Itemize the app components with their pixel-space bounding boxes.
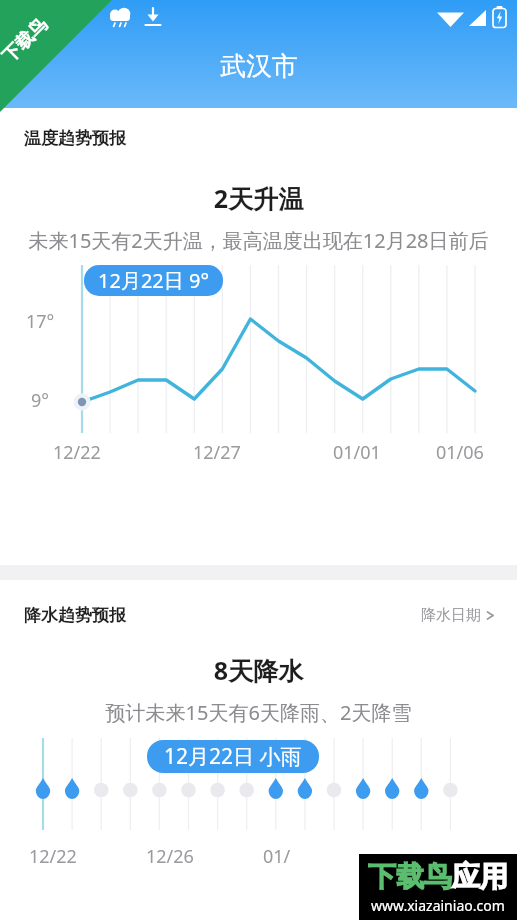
other: More [486, 611, 495, 620]
staticText: 01/01 [333, 440, 381, 465]
staticText: 17° [26, 309, 55, 334]
staticText: 降水趋势预报 [24, 605, 126, 626]
staticText: 应用 [452, 859, 508, 894]
button[interactable]: 12月22日 9° [84, 265, 223, 296]
staticText: 01/ [263, 844, 291, 869]
staticText: 12/26 [146, 844, 194, 869]
staticText: 12月22日 9° [98, 267, 209, 294]
staticText: 12/22 [53, 440, 101, 465]
staticText: 未来15天有2天升温，最高温度出现在12月28日前后 [24, 227, 493, 254]
staticText: 01/06 [436, 440, 484, 465]
staticText: 降水日期 [421, 606, 481, 625]
staticText: 下载鸟 [0, 13, 52, 68]
staticText: 12/22 [29, 844, 77, 869]
staticText: 武汉市 [220, 50, 298, 83]
staticText: 下载鸟 [368, 859, 452, 894]
staticText: 8天降水 [0, 653, 517, 687]
staticText: 温度趋势预报 [24, 128, 126, 149]
staticText: www.xiazainiao.com [371, 896, 505, 915]
staticText: 9° [31, 388, 49, 413]
staticText: 2天升温 [0, 181, 517, 215]
staticText: 12/27 [193, 440, 241, 465]
button[interactable]: 降水日期 [417, 602, 499, 629]
staticText: 12月22日 小雨 [164, 742, 302, 771]
staticText: 预计未来15天有6天降雨、2天降雪 [0, 699, 517, 726]
button[interactable]: 12月22日 小雨 [147, 740, 319, 773]
